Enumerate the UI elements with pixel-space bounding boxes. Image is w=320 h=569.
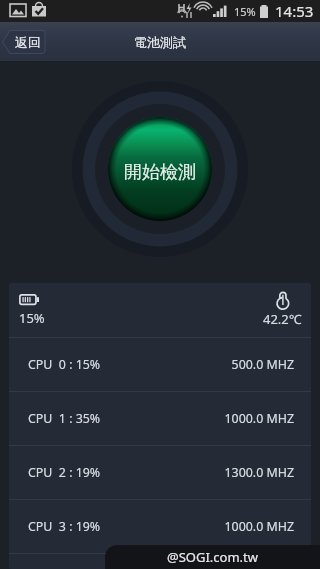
staticText: 14:53 xyxy=(275,1,314,21)
staticText: CPU 1 : 35% xyxy=(28,410,101,427)
staticText: 返回 xyxy=(15,34,41,50)
staticText: 15% xyxy=(19,309,45,327)
button[interactable]: CPU 2 : 19% xyxy=(9,446,311,499)
button[interactable]: CPU 1 : 35% xyxy=(9,392,311,445)
staticText: 電池測試 xyxy=(134,34,186,50)
staticText: 42.2℃ xyxy=(263,310,302,328)
staticText: @SOGI.com.tw xyxy=(167,548,258,566)
button[interactable]: CPU 3 : 19% xyxy=(9,500,311,553)
staticText: CPU 0 : 15% xyxy=(28,356,101,373)
staticText: CPU 3 : 19% xyxy=(28,518,101,535)
staticText: 500.0 MHZ xyxy=(102,356,294,373)
staticText: CPU 2 : 19% xyxy=(28,464,101,481)
button[interactable]: CPU 0 : 15% xyxy=(9,338,311,391)
staticText: 15% xyxy=(234,4,256,19)
button[interactable]: 開始檢測 xyxy=(70,79,250,259)
staticText: 開始檢測 xyxy=(124,161,196,184)
button[interactable]: 返回 xyxy=(1,29,46,55)
staticText: 1000.0 MHZ xyxy=(102,518,294,535)
staticText: 1300.0 MHZ xyxy=(102,464,294,481)
staticText: 1000.0 MHZ xyxy=(102,410,294,427)
